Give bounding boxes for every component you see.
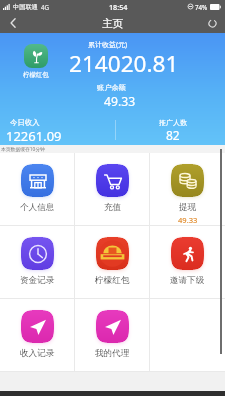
- button[interactable]: 我的代理: [75, 299, 150, 371]
- staticText: 82: [166, 127, 180, 143]
- button[interactable]: 柠檬红包: [75, 226, 150, 298]
- staticText: 今日收入: [10, 118, 40, 127]
- staticText: 4G: [41, 3, 50, 11]
- staticText: 充值: [104, 202, 122, 213]
- staticText: 18:54: [109, 2, 128, 12]
- staticText: 74%: [195, 3, 208, 11]
- staticText: 收入记录: [20, 348, 55, 359]
- staticText: 资金记录: [20, 275, 55, 286]
- staticText: 我的代理: [95, 348, 130, 359]
- staticText: 个人信息: [20, 202, 55, 213]
- button[interactable]: 个人信息: [0, 153, 75, 225]
- staticText: 214020.81: [69, 48, 179, 79]
- staticText: 49.33: [178, 215, 198, 225]
- staticText: 12261.09: [6, 127, 62, 145]
- button[interactable]: 收入记录: [0, 299, 75, 371]
- staticText: 邀请下级: [170, 275, 205, 286]
- staticText: 推广人数: [159, 118, 187, 127]
- button[interactable]: 提现: [150, 153, 225, 225]
- staticText: 49.33: [104, 93, 136, 110]
- button[interactable]: 资金记录: [0, 226, 75, 298]
- button[interactable]: 充值: [75, 153, 150, 225]
- button[interactable]: 邀请下级: [150, 226, 225, 298]
- staticText: 柠檬红包: [95, 275, 130, 286]
- staticText: 主页: [102, 17, 123, 30]
- staticText: 本页数据缓存10分钟: [1, 146, 45, 153]
- staticText: 提现: [179, 202, 197, 213]
- button[interactable]: Refresh: [199, 13, 225, 33]
- button[interactable]: Back: [0, 13, 26, 33]
- staticText: 柠檬红包: [23, 71, 49, 79]
- staticText: 累计收益(元): [88, 40, 128, 50]
- staticText: 账户余额: [97, 83, 126, 92]
- button[interactable]: 柠檬红包: [12, 44, 60, 79]
- staticText: 中国联通: [13, 3, 38, 11]
